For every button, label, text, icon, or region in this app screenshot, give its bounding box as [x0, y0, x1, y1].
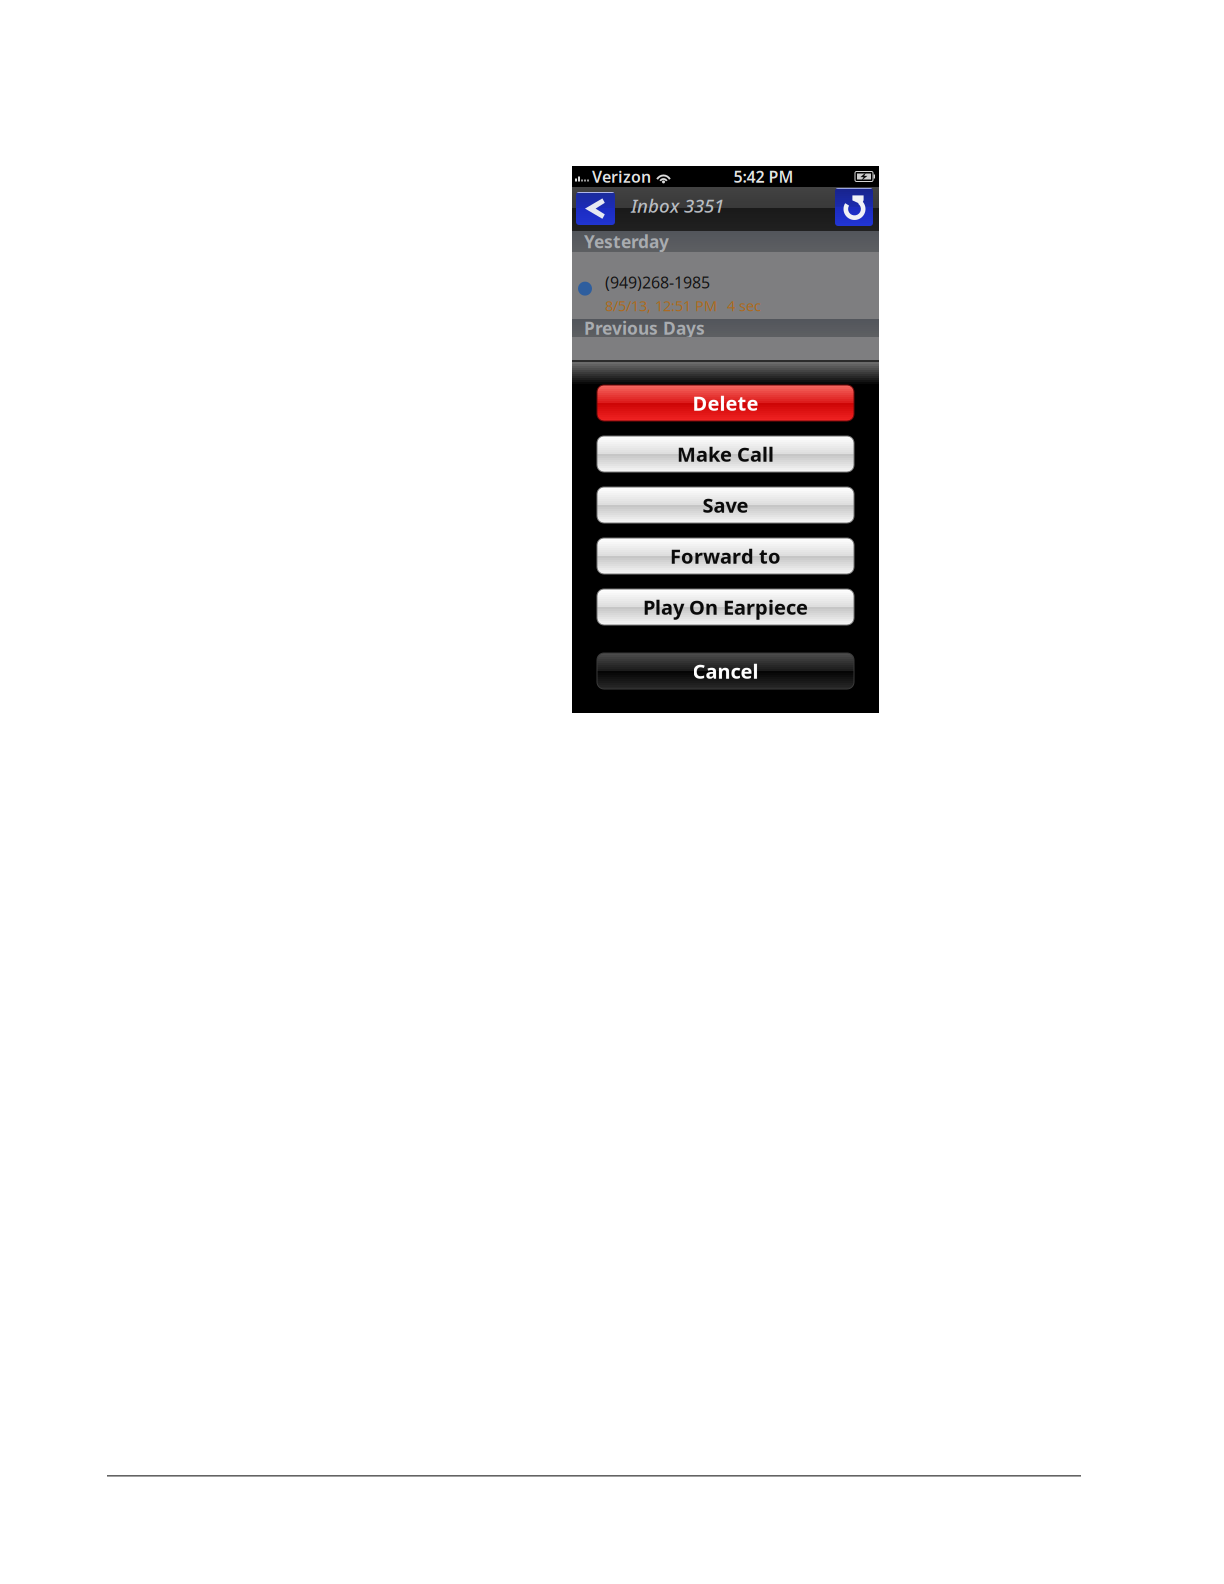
staticText: (949)268-1985: [605, 272, 710, 293]
button[interactable]: Save: [597, 487, 854, 523]
staticText: Yesterday: [584, 230, 669, 253]
button[interactable]: Make Call: [597, 436, 854, 472]
staticText: Inbox 3351: [631, 193, 724, 218]
staticText: 4 sec: [727, 296, 761, 315]
button[interactable]: Cancel: [597, 653, 854, 689]
staticText: Make Call: [677, 441, 774, 467]
staticText: Save: [702, 492, 748, 518]
staticText: Previous Days: [584, 316, 705, 339]
button[interactable]: Back: [576, 192, 615, 225]
staticText: Cancel: [692, 658, 758, 684]
button[interactable]: Play On Earpiece: [597, 589, 854, 625]
staticText: Play On Earpiece: [643, 594, 808, 620]
staticText: 5:42 PM: [733, 166, 793, 187]
button[interactable]: (949)268-1985: [572, 252, 879, 319]
staticText: Verizon: [592, 166, 651, 187]
staticText: Forward to: [670, 543, 781, 569]
button[interactable]: Forward to: [597, 538, 854, 574]
staticText: 8/5/13, 12:51 PM: [605, 296, 717, 315]
button[interactable]: Delete: [597, 385, 854, 421]
button[interactable]: Refresh: [835, 188, 873, 226]
staticText: Delete: [692, 390, 758, 416]
